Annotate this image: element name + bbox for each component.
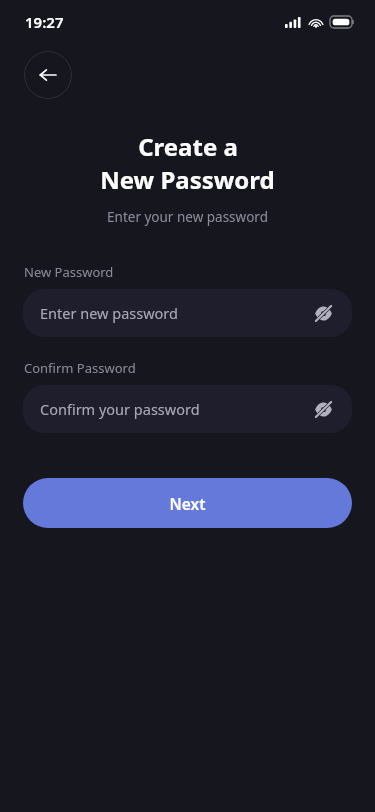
staticText: Create a <box>138 130 238 163</box>
staticText: 19:27 <box>25 12 64 32</box>
button[interactable]: Confirm your password <box>23 385 352 433</box>
button[interactable]: Enter new password <box>23 289 352 337</box>
staticText: Enter new password <box>40 303 310 323</box>
staticText: New Password <box>24 263 114 281</box>
staticText: New Password <box>100 163 275 196</box>
button[interactable]: Show password <box>310 300 336 326</box>
staticText: Confirm your password <box>40 399 310 419</box>
button[interactable]: Back <box>24 51 72 99</box>
staticText: Next <box>169 493 206 514</box>
button[interactable]: Show password <box>310 396 336 422</box>
staticText: Enter your new password <box>107 208 268 226</box>
staticText: Confirm Password <box>24 359 136 377</box>
button[interactable]: Next <box>23 478 352 528</box>
